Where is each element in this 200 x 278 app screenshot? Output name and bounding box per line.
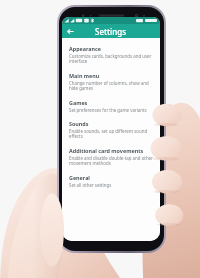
staticText: Set preferences for the game variants	[69, 107, 147, 113]
staticText: Main menu	[69, 72, 100, 79]
staticText: Customize cards, backgrounds and user in…	[69, 53, 156, 65]
button[interactable]: Main menu	[62, 70, 160, 94]
staticText: General	[69, 174, 90, 181]
staticText: Enable and disable double-tap and other …	[69, 155, 156, 167]
button[interactable]: Additional card movements	[62, 145, 160, 169]
button[interactable]: Appearance	[62, 43, 160, 67]
staticText: Sounds	[69, 120, 89, 127]
staticText: Additional card movements	[69, 147, 144, 154]
staticText: Appearance	[69, 45, 102, 52]
staticText: Enable sounds, set up different sound ef…	[69, 128, 156, 140]
button[interactable]: Back	[64, 25, 76, 37]
button[interactable]: Games	[62, 97, 160, 115]
staticText: Change number of columns, show and hide …	[69, 80, 156, 92]
button[interactable]: Sounds	[62, 118, 160, 142]
staticText: Set all other settings	[69, 182, 112, 188]
staticText: Settings	[95, 26, 127, 37]
button[interactable]: General	[62, 172, 160, 190]
staticText: Games	[69, 99, 88, 106]
